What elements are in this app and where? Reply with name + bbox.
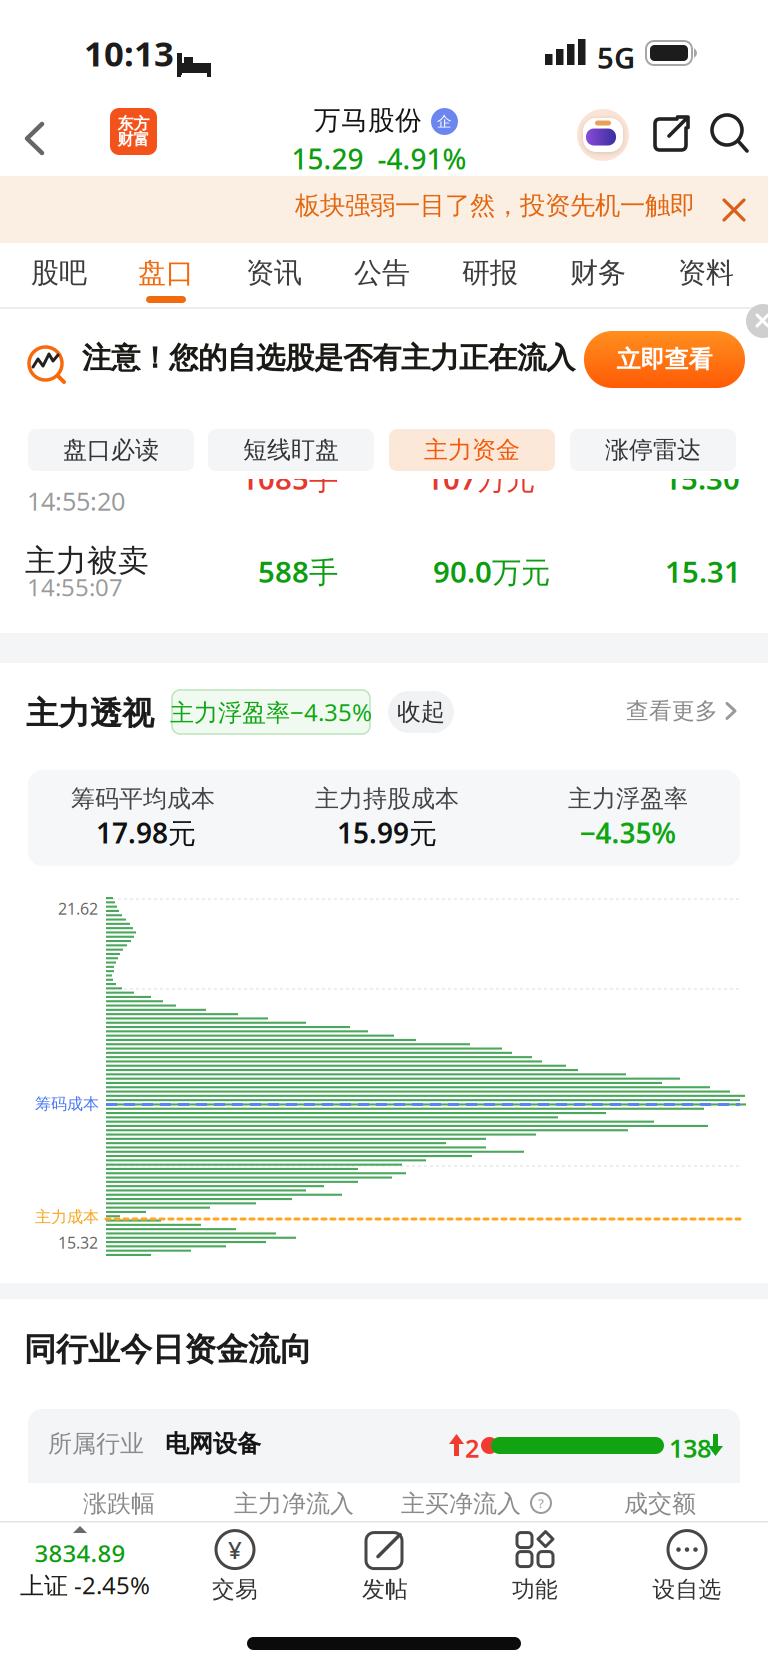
button[interactable]: 财务	[548, 249, 648, 297]
staticText: 收起	[397, 697, 445, 727]
staticText: 2	[465, 1431, 479, 1465]
button[interactable]: 功能	[475, 1525, 595, 1607]
button[interactable]: 设自选	[627, 1525, 747, 1607]
button[interactable]: 发帖	[325, 1525, 445, 1607]
staticText: 注意！您的自选股是否有主力正在流入	[82, 340, 575, 376]
staticText: 盘口必读	[63, 435, 159, 465]
staticText: 主力浮盈率−4.35%	[170, 696, 372, 728]
button[interactable]: Share	[653, 117, 691, 153]
staticText: 财富	[117, 129, 149, 149]
staticText: 资讯	[246, 256, 302, 290]
staticText: 3834.89	[34, 1537, 125, 1569]
staticText: 交易	[212, 1576, 258, 1603]
staticText: 成交额	[624, 1489, 696, 1518]
staticText: 设自选	[652, 1576, 721, 1603]
staticText: 研报	[462, 256, 518, 290]
button[interactable]: 盘口必读	[28, 429, 194, 471]
button[interactable]: 3834.89	[0, 1523, 170, 1613]
staticText: 主买净流入	[401, 1489, 521, 1518]
staticText: 电网设备	[165, 1429, 261, 1458]
staticText: 筹码成本	[35, 1094, 99, 1114]
staticText: 14:55:20	[27, 484, 125, 518]
staticText: 主力透视	[26, 694, 154, 733]
staticText: 功能	[512, 1576, 558, 1603]
staticText: 同行业今日资金流向	[24, 1330, 312, 1369]
button[interactable]: Back	[24, 122, 48, 156]
staticText: 15.32	[58, 1232, 98, 1253]
button[interactable]: 资讯	[224, 249, 324, 297]
button[interactable]: 立即查看	[584, 331, 745, 388]
staticText: 588手	[258, 552, 338, 591]
staticText: 90.0万元	[433, 552, 550, 591]
staticText: 21.62	[58, 898, 98, 919]
button[interactable]: Close card	[746, 304, 768, 338]
staticText: 盘口	[138, 256, 194, 290]
staticText: 主力净流入	[234, 1489, 354, 1518]
staticText: 所属行业	[48, 1429, 144, 1458]
staticText: 发帖	[362, 1576, 408, 1603]
staticText: 14:55:07	[27, 571, 123, 603]
staticText: 107万元	[426, 459, 535, 498]
staticText: −4.35%	[579, 814, 676, 851]
staticText: 企	[437, 112, 452, 130]
staticText: 5G	[597, 38, 635, 77]
staticText: 主力浮盈率	[568, 784, 688, 813]
staticText: 15.30	[664, 459, 740, 498]
staticText: 万马股份	[314, 104, 422, 137]
staticText: 上证 -2.45%	[20, 1569, 150, 1601]
staticText: 查看更多	[626, 697, 718, 725]
staticText: 涨停雷达	[605, 435, 701, 465]
button[interactable]: 东方财富	[110, 108, 157, 155]
staticText: 15.31	[665, 552, 741, 591]
staticText: 短线盯盘	[243, 435, 339, 465]
button[interactable]: Assistant	[577, 109, 629, 161]
staticText: 公告	[354, 256, 410, 290]
staticText: 涨跌幅	[83, 1489, 155, 1518]
staticText: 10:13	[84, 30, 174, 76]
button[interactable]: 收起	[388, 691, 454, 733]
staticText: 东方	[117, 114, 149, 133]
button[interactable]: 短线盯盘	[208, 429, 374, 471]
button[interactable]: 研报	[440, 249, 540, 297]
staticText: 15.29 -4.91%	[291, 140, 466, 177]
staticText: 15.99元	[337, 814, 437, 851]
staticText: 资料	[678, 256, 734, 290]
staticText: ?	[538, 1494, 544, 1512]
button[interactable]: ¥	[175, 1525, 295, 1607]
staticText: 17.98元	[96, 814, 196, 851]
staticText: 立即查看	[616, 345, 712, 374]
staticText: 板块强弱一目了然，投资先机一触即	[295, 190, 695, 221]
staticText: 筹码平均成本	[71, 784, 215, 813]
staticText: 138	[669, 1431, 711, 1465]
staticText: 主力成本	[35, 1207, 99, 1227]
button[interactable]: 主力资金	[389, 429, 555, 471]
staticText: 主力被卖	[25, 542, 149, 580]
button[interactable]: 盘口	[116, 249, 216, 297]
button[interactable]: Close	[724, 200, 744, 220]
button[interactable]: 资料	[656, 249, 756, 297]
staticText: 主力资金	[424, 435, 520, 465]
button[interactable]: Search	[712, 115, 750, 153]
button[interactable]: 涨停雷达	[570, 429, 736, 471]
staticText: 主力持股成本	[315, 784, 459, 813]
button[interactable]: 查看更多	[626, 697, 738, 725]
staticText: 股吧	[31, 256, 87, 290]
staticText: ¥	[228, 1534, 242, 1565]
button[interactable]: 股吧	[9, 249, 109, 297]
button[interactable]: 公告	[332, 249, 432, 297]
staticText: 财务	[570, 256, 626, 290]
staticText: 1085手	[241, 459, 338, 498]
